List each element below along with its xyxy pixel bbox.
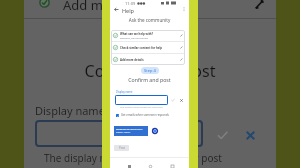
staticText: Add more details — [120, 58, 144, 62]
button[interactable]: Edit — [179, 57, 184, 62]
staticText: Display name — [116, 90, 133, 94]
staticText: The display name shown on your post — [44, 151, 222, 165]
staticText: Add more details — [63, 0, 167, 14]
button[interactable]: Back — [112, 5, 121, 14]
staticText: Display name — [35, 103, 105, 118]
staticText: Post — [119, 146, 125, 150]
button[interactable]: More options — [180, 5, 188, 13]
button[interactable]: Edit — [179, 45, 184, 50]
button[interactable]: Post — [114, 145, 129, 151]
button[interactable]: Edit — [179, 33, 184, 38]
button[interactable]: Confirm — [214, 127, 230, 143]
staticText: Confirm and post — [110, 76, 189, 83]
staticText: protected by reCAPTCHA — [116, 128, 143, 131]
button[interactable]: Clear — [242, 127, 258, 143]
button[interactable]: What can we help with? — [111, 30, 185, 41]
button[interactable]: Get emails when someone responds — [116, 113, 169, 117]
staticText: Step 4 — [144, 68, 156, 73]
button[interactable]: Home — [147, 163, 153, 168]
staticText: 11:09 — [125, 1, 136, 6]
staticText: Ask the community — [110, 17, 189, 23]
staticText: Recovery, file and photos — [120, 36, 149, 39]
staticText: Get emails when someone responds — [121, 113, 169, 117]
button[interactable]: Check similar content for help — [111, 42, 185, 53]
button[interactable]: Confirm — [170, 97, 176, 103]
staticText: Confirm and post — [24, 60, 276, 82]
staticText: The display name shown on your post — [120, 105, 163, 108]
button[interactable]: Step 4 — [144, 68, 156, 73]
staticText: What can we help with? — [120, 32, 154, 36]
staticText: Privacy - Terms — [116, 131, 131, 134]
button[interactable]: Add more details — [111, 54, 185, 65]
button[interactable]: Clear — [178, 97, 184, 103]
button[interactable]: Recents — [169, 163, 175, 168]
button[interactable]: Back — [126, 163, 132, 168]
staticText: Help — [122, 7, 134, 14]
button[interactable]: Edit — [252, 0, 267, 12]
staticText: Check similar content for help — [120, 46, 163, 50]
